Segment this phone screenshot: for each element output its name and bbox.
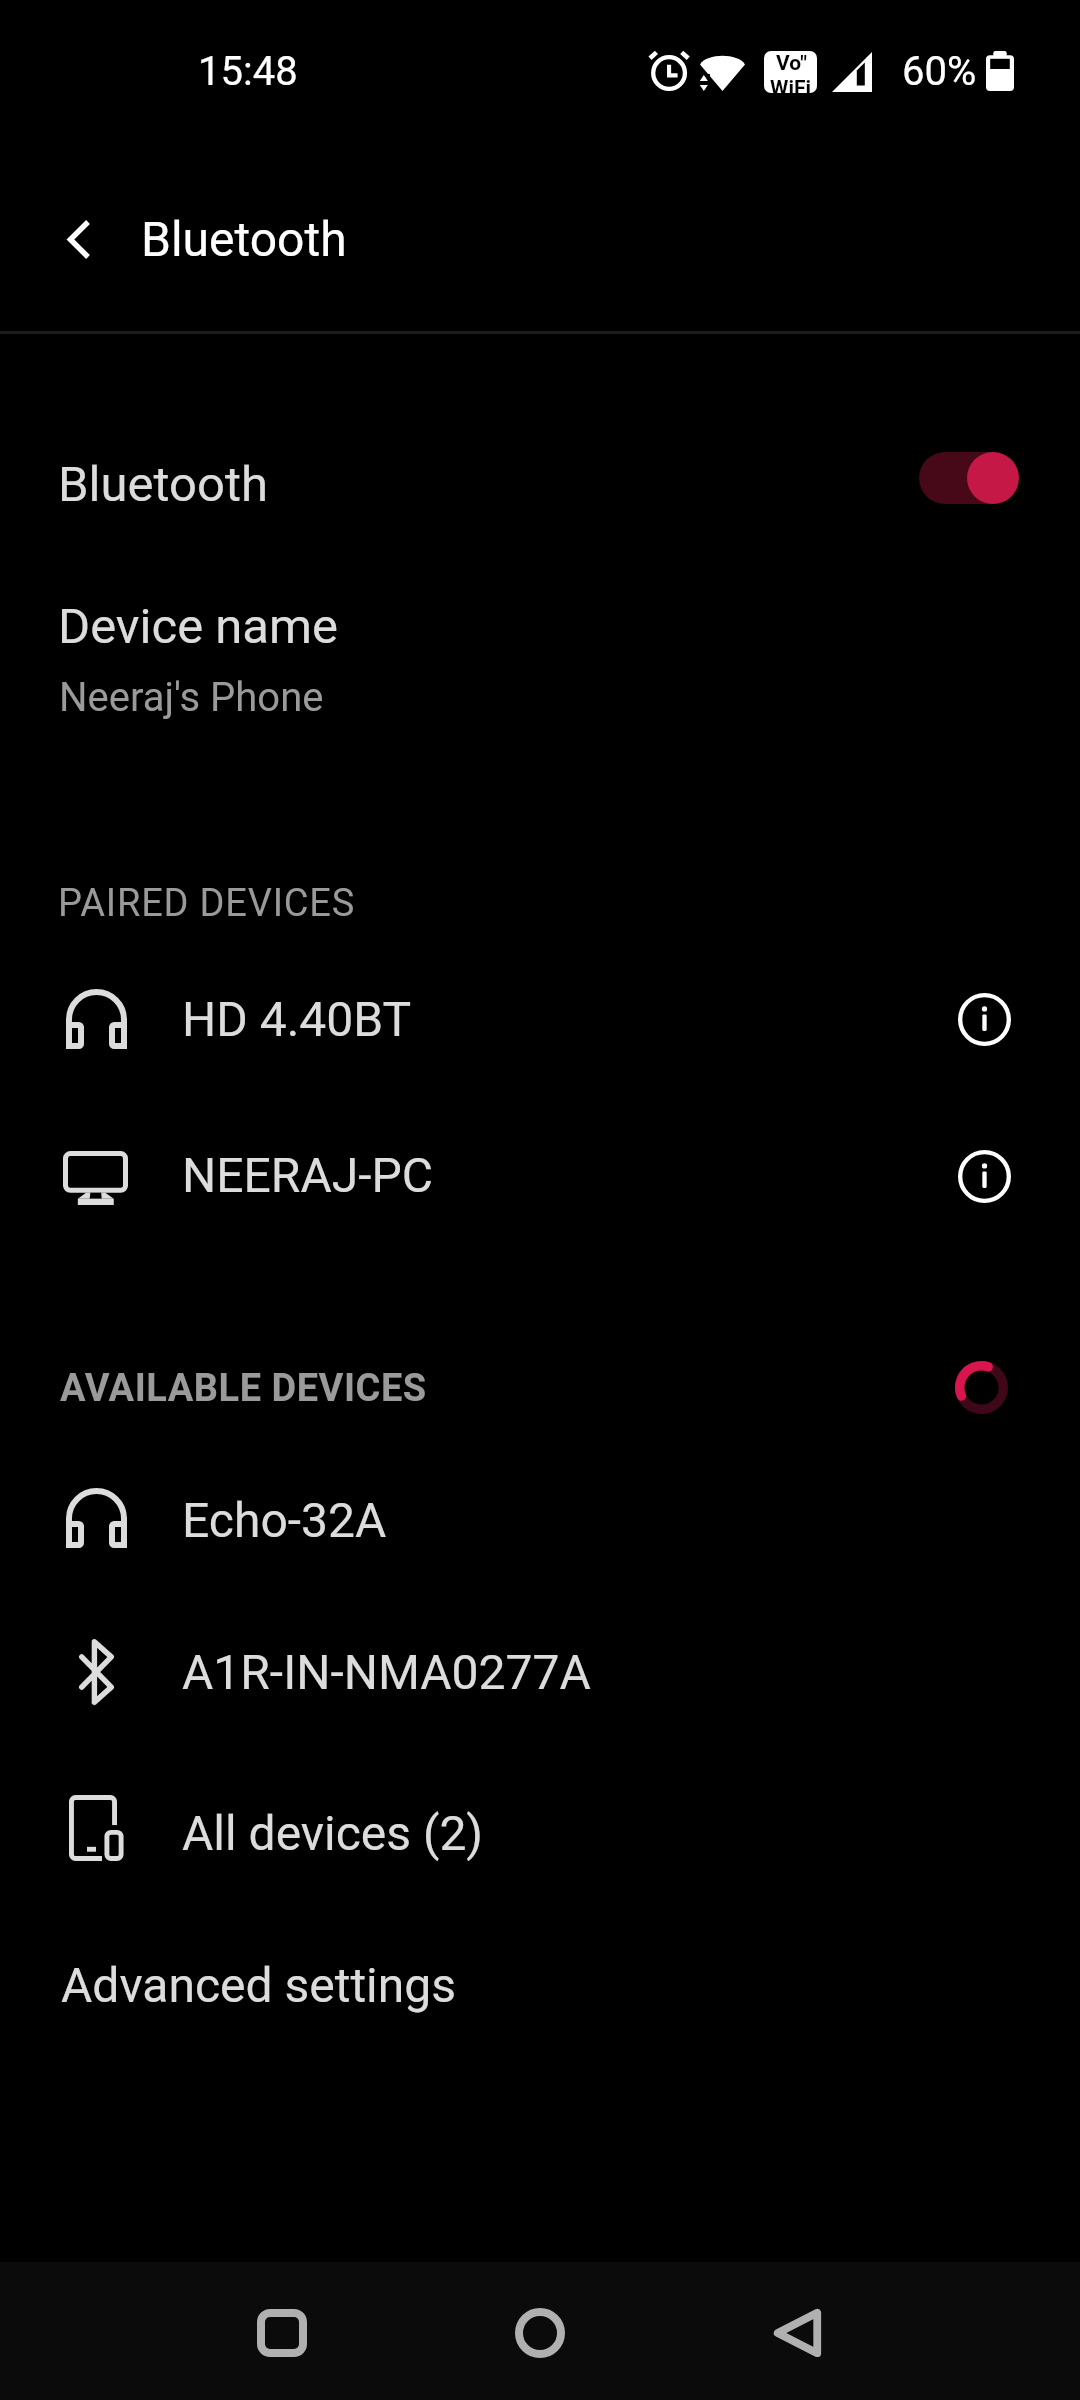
staticText: PAIRED DEVICES — [58, 881, 356, 926]
button[interactable]: Home — [480, 2273, 600, 2393]
staticText: NEERAJ-PC — [182, 1147, 433, 1203]
staticText: Vo" — [776, 51, 807, 76]
button[interactable]: All devices (2) — [0, 1760, 1080, 1910]
button[interactable]: Recents — [222, 2273, 342, 2393]
button[interactable]: Device name — [0, 580, 1080, 750]
staticText: All devices (2) — [182, 1805, 484, 1861]
button[interactable]: Advanced settings — [0, 1920, 1080, 2050]
button[interactable]: Toggle Bluetooth — [919, 452, 1019, 504]
button[interactable]: NEERAJ-PC — [0, 1102, 1080, 1252]
staticText: WiFi — [770, 76, 812, 93]
staticText: Advanced settings — [61, 1957, 456, 2013]
button[interactable]: Back — [737, 2273, 857, 2393]
staticText: Bluetooth — [58, 456, 268, 513]
button[interactable]: Device details — [914, 1106, 1054, 1246]
staticText: Device name — [58, 598, 338, 655]
staticText: Bluetooth — [141, 211, 347, 267]
staticText: 15:48 — [198, 48, 298, 95]
button[interactable]: Echo-32A — [0, 1447, 1080, 1597]
button[interactable]: Device details — [914, 949, 1054, 1089]
staticText: Echo-32A — [182, 1492, 387, 1548]
button[interactable]: Bluetooth — [0, 398, 1080, 562]
staticText: A1R-IN-NMA0277A — [182, 1644, 591, 1700]
button[interactable]: HD 4.40BT — [0, 946, 1080, 1096]
button[interactable]: Back — [36, 196, 122, 282]
staticText: 60% — [902, 48, 977, 95]
staticText: HD 4.40BT — [182, 991, 412, 1047]
staticText: AVAILABLE DEVICES — [60, 1366, 427, 1411]
staticText: Neeraj's Phone — [59, 674, 324, 721]
button[interactable]: A1R-IN-NMA0277A — [0, 1599, 1080, 1749]
